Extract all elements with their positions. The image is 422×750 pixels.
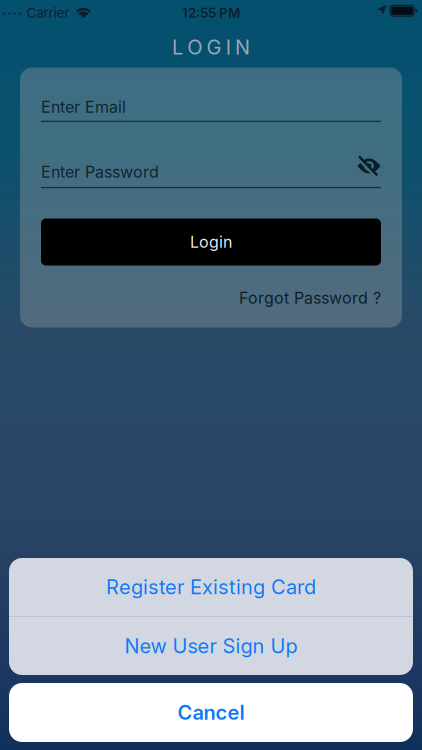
staticText: Carrier [26, 5, 69, 21]
staticText: Forgot Password ? [239, 288, 381, 307]
button[interactable]: Cancel [9, 683, 413, 742]
staticText: G [206, 35, 221, 59]
button[interactable]: Show password [356, 152, 382, 176]
staticText: Enter Password [41, 162, 159, 181]
staticText: I [226, 35, 231, 59]
staticText: N [235, 35, 250, 59]
button[interactable]: New User Sign Up [9, 617, 413, 675]
button[interactable]: Login [41, 218, 381, 265]
staticText: New User Sign Up [124, 634, 297, 658]
staticText: Register Existing Card [106, 575, 316, 599]
button[interactable]: Register Existing Card [9, 558, 413, 616]
staticText: L [172, 35, 183, 59]
staticText: Cancel [177, 701, 244, 724]
staticText: O [187, 35, 202, 59]
staticText: 12:55 PM [182, 5, 240, 21]
staticText: Login [190, 233, 232, 251]
staticText: Enter Email [41, 97, 126, 116]
button[interactable]: Forgot Password ? [239, 288, 381, 307]
